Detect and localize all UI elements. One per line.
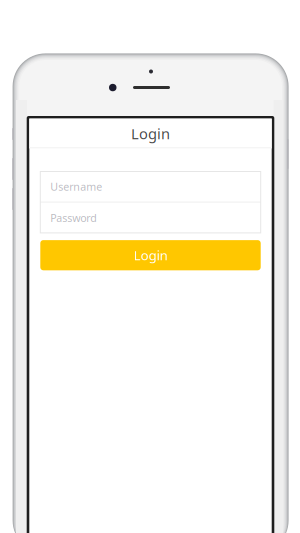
button[interactable]: Password [40,203,261,233]
button[interactable]: Login [40,240,261,270]
button[interactable]: Username [40,171,261,202]
staticText: Password [50,211,97,225]
staticText: Username [50,179,102,194]
staticText: Login [131,124,170,143]
staticText: Login [133,246,167,264]
